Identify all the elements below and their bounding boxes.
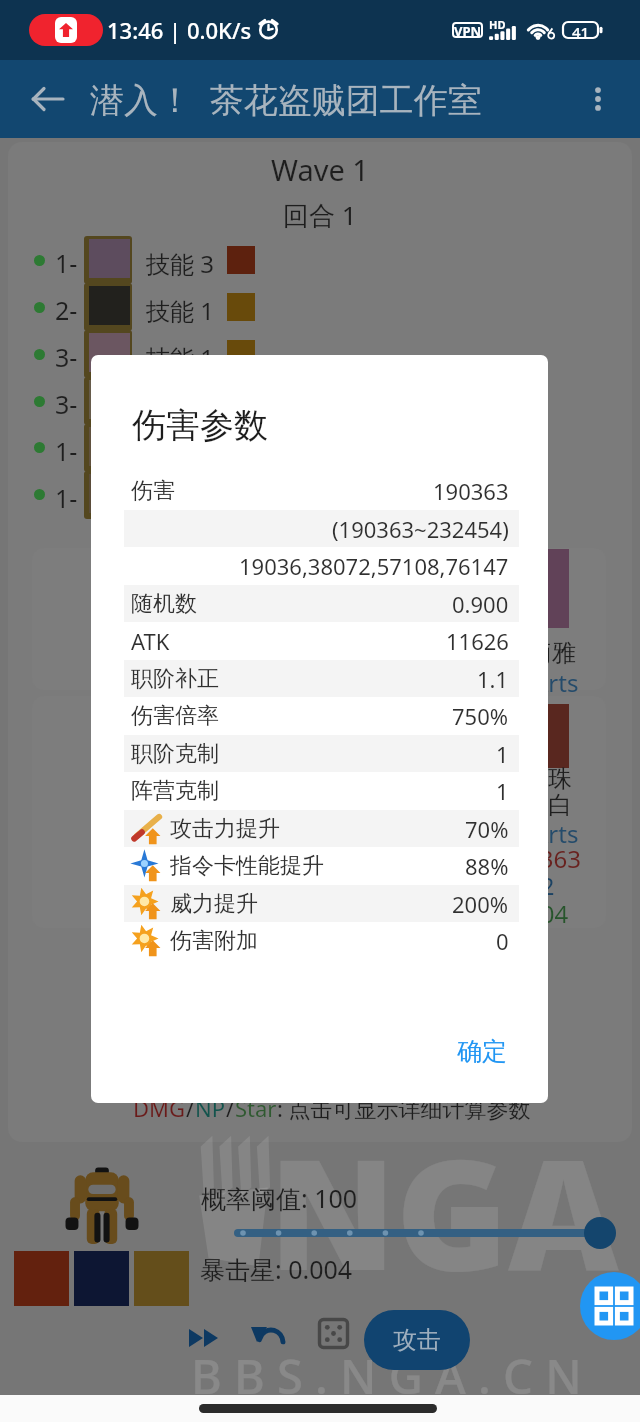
- staticText: 伤害倍率: [131, 702, 219, 730]
- button[interactable]: Back: [22, 73, 74, 125]
- staticText: NP: [195, 1093, 226, 1123]
- button[interactable]: 威力提升: [124, 885, 519, 923]
- staticText: 1-: [55, 434, 78, 468]
- button[interactable]: 伤害倍率: [124, 697, 519, 735]
- staticText: 威力提升: [170, 890, 258, 918]
- staticText: 伤害: [131, 477, 175, 505]
- staticText: 19036,38072,57108,76147: [239, 551, 509, 581]
- staticText: 概率阈值: 100: [201, 1181, 358, 1215]
- staticText: 莉雅: [528, 638, 576, 668]
- staticText: Arts: [533, 817, 579, 850]
- staticText: 技能 1: [146, 294, 214, 327]
- staticText: 职阶补正: [131, 665, 219, 693]
- staticText: 1-: [55, 481, 78, 515]
- staticText: 32: [527, 869, 555, 902]
- staticText: 攻击: [393, 1325, 441, 1355]
- button[interactable]: (190363~232454): [124, 510, 519, 548]
- staticText: 3-: [55, 387, 78, 421]
- button[interactable]: ATK: [124, 622, 519, 660]
- staticText: 1: [496, 739, 509, 769]
- button[interactable]: 职阶补正: [124, 660, 519, 698]
- staticText: Star: [235, 1093, 277, 1123]
- staticText: HD: [489, 17, 506, 32]
- staticText: 珠: [548, 764, 572, 794]
- staticText: 0: [496, 926, 509, 956]
- staticText: NGA: [269, 1108, 619, 1315]
- button[interactable]: 19036,38072,57108,76147: [124, 547, 519, 585]
- button[interactable]: 阵营克制: [124, 772, 519, 810]
- staticText: 技能 1: [146, 388, 214, 421]
- staticText: 职阶克制: [131, 740, 219, 768]
- staticText: 攻击力提升: [170, 815, 280, 843]
- staticText: 技能 1: [146, 435, 214, 468]
- staticText: 11626: [446, 626, 509, 656]
- button[interactable]: 伤害附加: [124, 922, 519, 960]
- staticText: 潜入！ 茶花盗贼团工作室: [90, 76, 482, 122]
- staticText: 阵营克制: [131, 777, 219, 805]
- staticText: 伤害附加: [170, 927, 258, 955]
- button[interactable]: 攻击: [364, 1310, 470, 1370]
- staticText: 004: [527, 897, 569, 930]
- staticText: /: [226, 1093, 235, 1123]
- staticText: 1.1: [477, 664, 509, 694]
- staticText: VPN: [454, 22, 482, 38]
- staticText: 暴击星: 0.004: [200, 1252, 353, 1286]
- staticText: /: [186, 1093, 195, 1123]
- staticText: 伤害参数: [132, 404, 268, 447]
- staticText: B B S . N G A . C N: [191, 1344, 582, 1408]
- staticText: ATK: [131, 626, 170, 656]
- staticText: 回合 1: [283, 197, 357, 233]
- button[interactable]: 确定: [443, 1026, 521, 1077]
- staticText: 随机数: [131, 590, 197, 618]
- button[interactable]: Random: [310, 1310, 356, 1356]
- staticText: 1: [496, 776, 509, 806]
- staticText: DMG: [133, 1093, 186, 1123]
- staticText: (190363~232454): [332, 514, 509, 544]
- staticText: 技能 1: [146, 341, 214, 374]
- staticText: 0363: [526, 842, 581, 875]
- button[interactable]: 随机数: [124, 585, 519, 623]
- button[interactable]: Undo: [245, 1314, 291, 1360]
- staticText: 88%: [465, 851, 509, 881]
- staticText: 190363: [433, 476, 509, 506]
- staticText: 41: [572, 22, 590, 38]
- staticText: 0.900: [452, 589, 509, 619]
- staticText: 13:46 | 0.0K/s: [107, 15, 252, 45]
- staticText: 3-: [55, 340, 78, 374]
- button[interactable]: More options: [574, 75, 622, 123]
- staticText: Wave 1: [271, 150, 369, 189]
- staticText: 技能 1: [146, 482, 214, 515]
- button[interactable]: 职阶克制: [124, 735, 519, 773]
- staticText: 确定: [457, 1036, 507, 1067]
- button[interactable]: 攻击力提升: [124, 810, 519, 848]
- button[interactable]: Fast forward: [182, 1316, 226, 1360]
- staticText: 2-: [55, 293, 78, 327]
- staticText: : 点击可显示详细计算参数: [277, 1093, 531, 1123]
- staticText: 指令卡性能提升: [170, 852, 324, 880]
- staticText: 70%: [465, 814, 509, 844]
- staticText: 200%: [452, 889, 509, 919]
- button[interactable]: 伤害: [124, 472, 519, 510]
- button[interactable]: 指令卡性能提升: [124, 847, 519, 885]
- staticText: Arts: [533, 666, 579, 699]
- staticText: 白: [548, 790, 572, 820]
- staticText: 750%: [452, 701, 509, 731]
- staticText: 1-: [55, 246, 78, 280]
- staticText: 技能 3: [146, 247, 214, 280]
- button[interactable]: Apps grid: [580, 1272, 640, 1340]
